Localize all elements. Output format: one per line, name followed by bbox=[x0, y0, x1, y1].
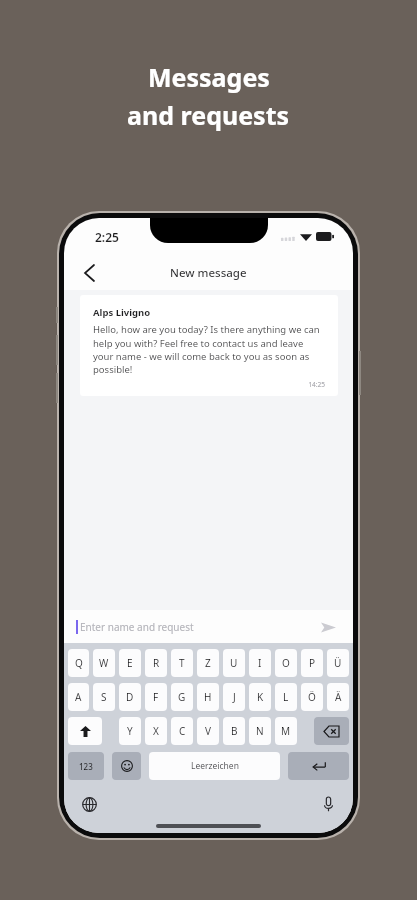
staticText: G bbox=[178, 690, 186, 704]
button[interactable]: E bbox=[119, 649, 141, 677]
button[interactable]: 123 bbox=[68, 752, 104, 780]
staticText: T bbox=[179, 656, 185, 670]
button[interactable]: Leerzeichen bbox=[149, 752, 280, 780]
staticText: M bbox=[281, 724, 291, 738]
staticText: B bbox=[231, 724, 238, 738]
staticText: S bbox=[101, 690, 107, 704]
staticText: D bbox=[126, 690, 134, 704]
staticText: E bbox=[127, 656, 133, 670]
button[interactable]: F bbox=[145, 683, 167, 711]
button[interactable]: Q bbox=[68, 649, 89, 677]
button[interactable] bbox=[68, 717, 102, 745]
staticText: Z bbox=[205, 656, 211, 670]
button[interactable]: O bbox=[275, 649, 297, 677]
staticText: P bbox=[309, 656, 316, 670]
staticText: 2:25 bbox=[95, 229, 119, 245]
button[interactable]: X bbox=[145, 717, 167, 745]
button[interactable]: Emoji bbox=[112, 752, 141, 780]
staticText: I bbox=[258, 656, 262, 670]
staticText: Ö bbox=[308, 690, 316, 704]
staticText: C bbox=[179, 724, 186, 738]
button[interactable]: Y bbox=[119, 717, 141, 745]
staticText: N bbox=[256, 724, 264, 738]
button[interactable]: Ü bbox=[327, 649, 349, 677]
staticText: V bbox=[205, 724, 211, 738]
button[interactable]: Return bbox=[288, 752, 349, 780]
button[interactable]: Send bbox=[317, 616, 339, 638]
staticText: U bbox=[230, 656, 238, 670]
staticText: Q bbox=[75, 656, 83, 670]
staticText: A bbox=[75, 690, 82, 704]
button[interactable]: T bbox=[171, 649, 193, 677]
staticText: F bbox=[153, 690, 159, 704]
button[interactable]: Change keyboard bbox=[78, 793, 100, 815]
staticText: 14:25 bbox=[93, 380, 325, 389]
button[interactable]: A bbox=[68, 683, 89, 711]
button[interactable]: S bbox=[93, 683, 115, 711]
staticText: Ä bbox=[335, 690, 342, 704]
button[interactable]: W bbox=[93, 649, 115, 677]
staticText: L bbox=[283, 690, 289, 704]
button[interactable]: Back bbox=[74, 258, 104, 288]
button[interactable]: K bbox=[249, 683, 271, 711]
staticText: Enter name and request bbox=[80, 620, 317, 634]
button[interactable]: N bbox=[249, 717, 271, 745]
staticText: Ü bbox=[334, 656, 342, 670]
button[interactable]: M bbox=[275, 717, 297, 745]
button[interactable]: D bbox=[119, 683, 141, 711]
button[interactable]: B bbox=[223, 717, 245, 745]
staticText: 123 bbox=[79, 761, 93, 772]
staticText: H bbox=[204, 690, 212, 704]
staticText: Hello, how are you today? Is there anyth… bbox=[93, 323, 325, 375]
staticText: New message bbox=[170, 265, 247, 281]
button[interactable]: H bbox=[197, 683, 219, 711]
staticText: X bbox=[153, 724, 159, 738]
button[interactable]: R bbox=[145, 649, 167, 677]
staticText: and requests bbox=[127, 98, 290, 132]
staticText: Leerzeichen bbox=[191, 760, 239, 772]
staticText: Messages bbox=[148, 60, 270, 94]
button[interactable]: Ö bbox=[301, 683, 323, 711]
staticText: W bbox=[99, 656, 109, 670]
button[interactable]: G bbox=[171, 683, 193, 711]
button[interactable]: I bbox=[249, 649, 271, 677]
staticText: Alps Livigno bbox=[93, 306, 151, 319]
button[interactable]: Backspace bbox=[314, 717, 349, 745]
staticText: J bbox=[233, 690, 236, 704]
button[interactable]: Dictate bbox=[317, 793, 339, 815]
staticText: O bbox=[282, 656, 290, 670]
button[interactable]: J bbox=[223, 683, 245, 711]
button[interactable]: Alps Livigno bbox=[80, 295, 338, 396]
button[interactable]: U bbox=[223, 649, 245, 677]
button[interactable]: V bbox=[197, 717, 219, 745]
button[interactable]: L bbox=[275, 683, 297, 711]
staticText: Y bbox=[127, 724, 133, 738]
staticText: K bbox=[257, 690, 264, 704]
button[interactable]: Z bbox=[197, 649, 219, 677]
button[interactable]: P bbox=[301, 649, 323, 677]
button[interactable]: C bbox=[171, 717, 193, 745]
staticText: R bbox=[153, 656, 160, 670]
button[interactable]: Ä bbox=[327, 683, 349, 711]
